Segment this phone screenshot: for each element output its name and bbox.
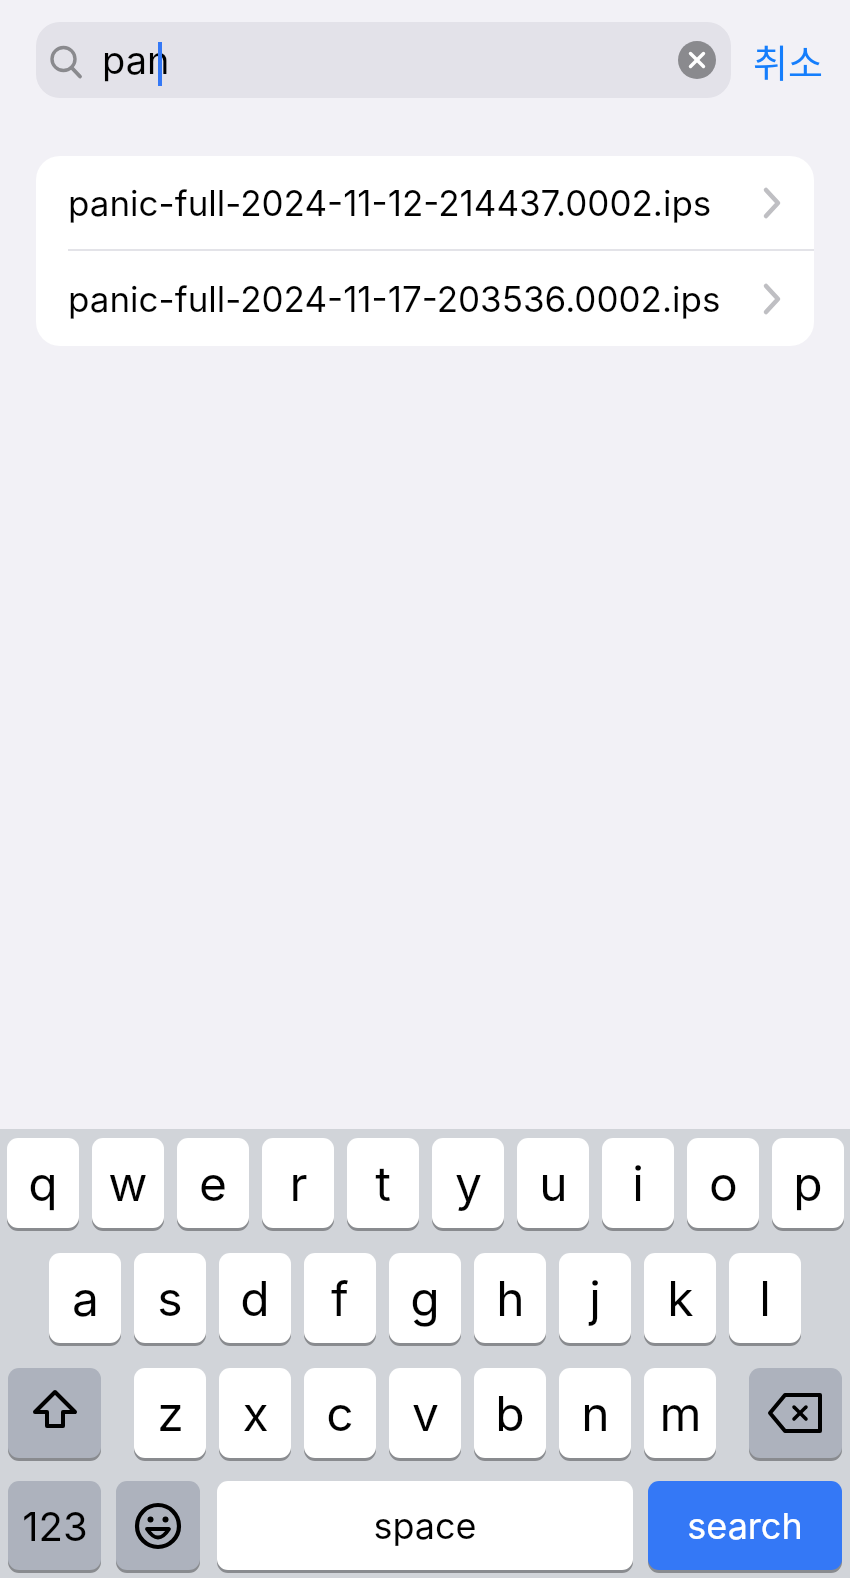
- staticText: f: [331, 1269, 349, 1327]
- button[interactable]: e: [177, 1138, 249, 1228]
- staticText: b: [495, 1384, 525, 1442]
- button[interactable]: x: [219, 1368, 291, 1458]
- staticText: i: [632, 1154, 644, 1212]
- staticText: m: [659, 1384, 702, 1442]
- button[interactable]: q: [7, 1138, 79, 1228]
- staticText: space: [373, 1504, 477, 1548]
- button[interactable]: j: [559, 1253, 631, 1343]
- staticText: c: [326, 1384, 354, 1442]
- staticText: q: [28, 1154, 58, 1212]
- button[interactable]: c: [304, 1368, 376, 1458]
- staticText: d: [240, 1269, 270, 1327]
- staticText: o: [709, 1154, 738, 1212]
- button[interactable]: m: [644, 1368, 716, 1458]
- staticText: panic-full-2024-11-17-203536.0002.ips: [68, 278, 721, 320]
- staticText: s: [157, 1269, 183, 1327]
- button[interactable]: a: [49, 1253, 121, 1343]
- button[interactable]: g: [389, 1253, 461, 1343]
- button[interactable]: s: [134, 1253, 206, 1343]
- button[interactable]: [749, 1368, 842, 1458]
- button[interactable]: [678, 41, 716, 79]
- staticText: u: [539, 1154, 568, 1212]
- staticText: n: [581, 1384, 610, 1442]
- staticText: w: [108, 1154, 148, 1212]
- button[interactable]: b: [474, 1368, 546, 1458]
- button[interactable]: n: [559, 1368, 631, 1458]
- staticText: v: [412, 1384, 439, 1442]
- button[interactable]: t: [347, 1138, 419, 1228]
- staticText: panic-full-2024-11-12-214437.0002.ips: [68, 182, 712, 224]
- button[interactable]: [8, 1368, 101, 1458]
- button[interactable]: v: [389, 1368, 461, 1458]
- button[interactable]: u: [517, 1138, 589, 1228]
- staticText: k: [667, 1269, 694, 1327]
- staticText: r: [289, 1154, 308, 1212]
- button[interactable]: 취소: [745, 22, 830, 98]
- staticText: search: [687, 1504, 803, 1548]
- button[interactable]: panic-full-2024-11-17-203536.0002.ips: [36, 251, 814, 346]
- button[interactable]: d: [219, 1253, 291, 1343]
- button[interactable]: z: [134, 1368, 206, 1458]
- button[interactable]: panic-full-2024-11-12-214437.0002.ips: [36, 156, 814, 250]
- button[interactable]: w: [92, 1138, 164, 1228]
- staticText: y: [455, 1154, 482, 1212]
- staticText: j: [589, 1269, 601, 1327]
- button[interactable]: p: [772, 1138, 844, 1228]
- staticText: z: [157, 1384, 184, 1442]
- staticText: a: [72, 1269, 99, 1327]
- staticText: e: [199, 1154, 227, 1212]
- staticText: t: [375, 1154, 391, 1212]
- button[interactable]: l: [729, 1253, 801, 1343]
- button[interactable]: o: [687, 1138, 759, 1228]
- button[interactable]: k: [644, 1253, 716, 1343]
- staticText: 취소: [753, 33, 823, 88]
- button[interactable]: pan: [36, 22, 731, 98]
- button[interactable]: space: [217, 1481, 633, 1570]
- staticText: 123: [22, 1502, 88, 1550]
- staticText: h: [496, 1269, 525, 1327]
- staticText: pan: [102, 37, 170, 83]
- button[interactable]: i: [602, 1138, 674, 1228]
- button[interactable]: [116, 1481, 200, 1570]
- staticText: p: [793, 1154, 823, 1212]
- staticText: x: [242, 1384, 269, 1442]
- button[interactable]: h: [474, 1253, 546, 1343]
- button[interactable]: y: [432, 1138, 504, 1228]
- staticText: g: [410, 1269, 440, 1327]
- button[interactable]: 123: [8, 1481, 101, 1570]
- button[interactable]: r: [262, 1138, 334, 1228]
- staticText: l: [759, 1269, 771, 1327]
- button[interactable]: f: [304, 1253, 376, 1343]
- button[interactable]: search: [648, 1481, 842, 1570]
